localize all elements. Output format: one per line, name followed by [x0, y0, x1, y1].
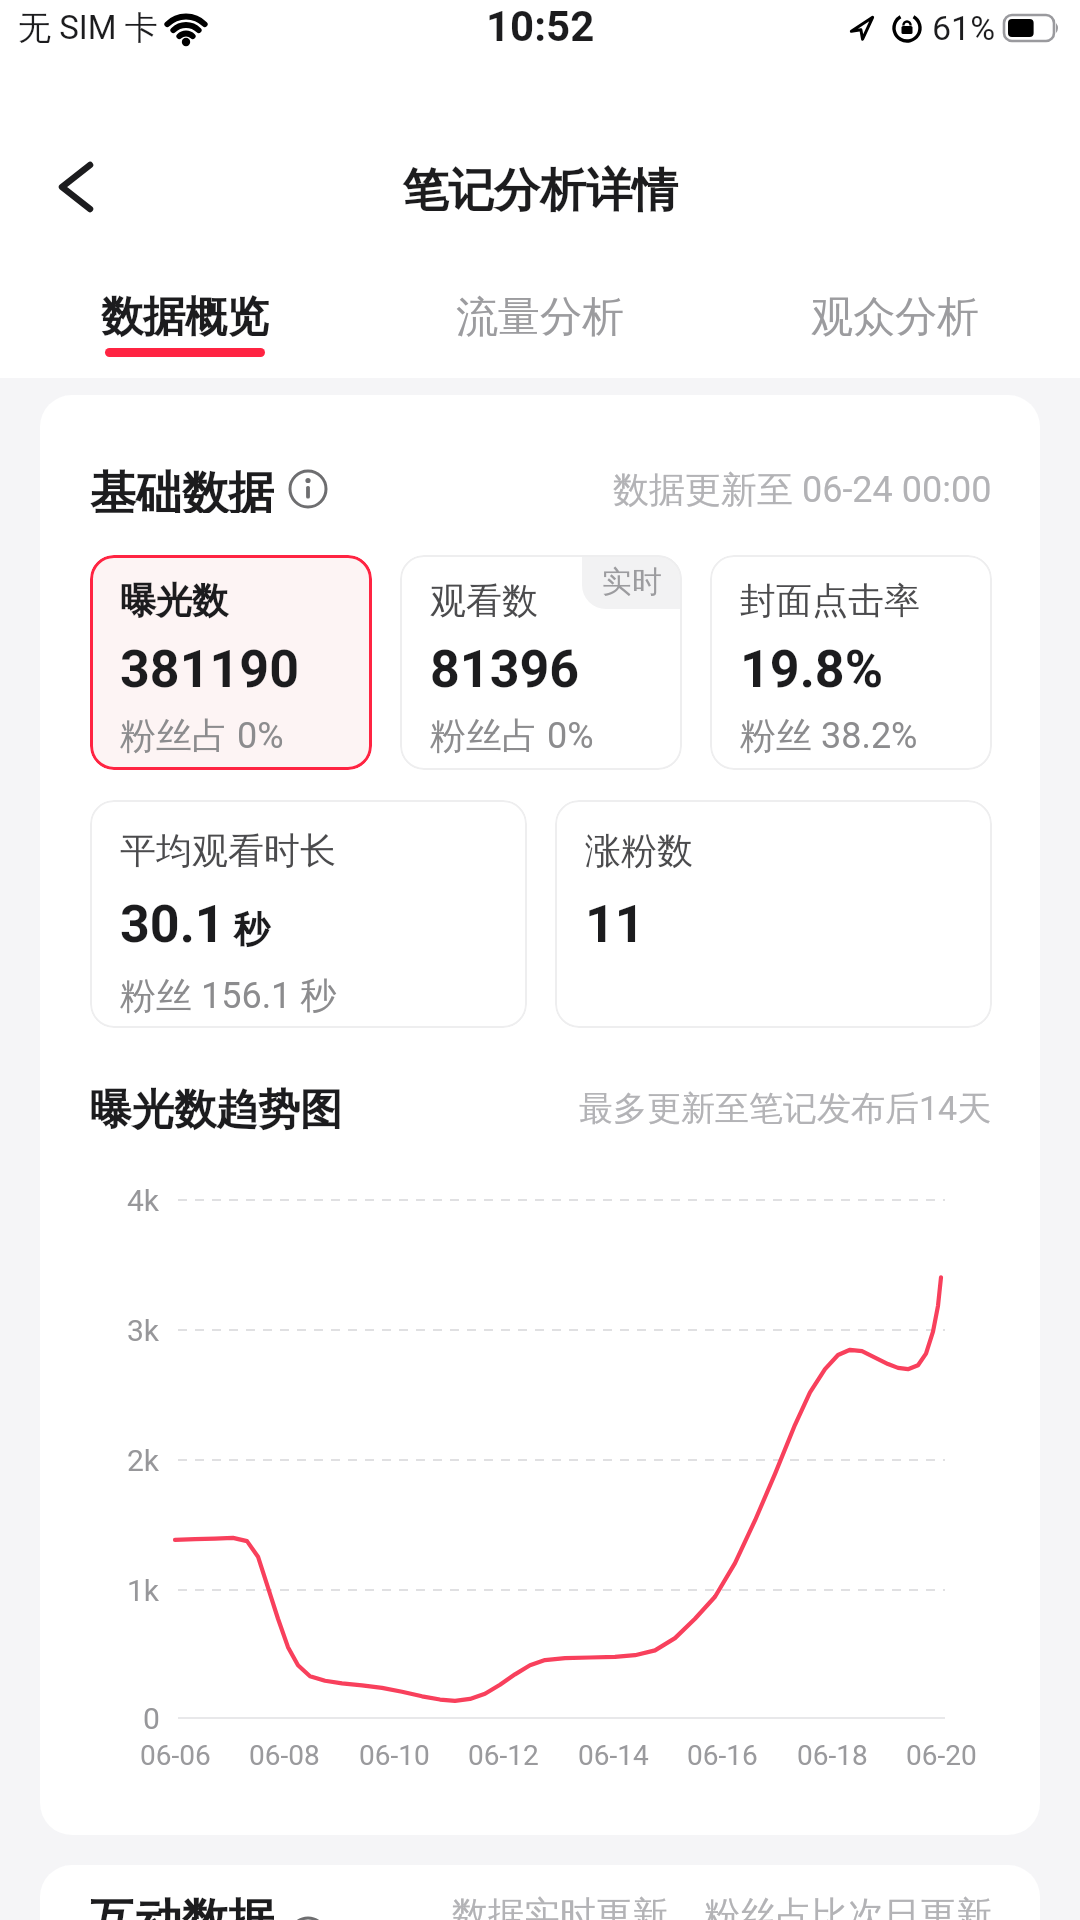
staticText: 06-06	[140, 1739, 211, 1772]
button[interactable]: 封面点击率	[710, 555, 992, 770]
staticText: 06-08	[249, 1739, 320, 1772]
staticText: 曝光数	[120, 578, 228, 623]
staticText: 81396	[430, 639, 580, 700]
staticText: 粉丝 38.2%	[740, 713, 918, 758]
button[interactable]: 平均观看时长	[90, 800, 527, 1028]
staticText: 381190	[120, 639, 300, 700]
button[interactable]: 观众分析	[717, 245, 1072, 378]
staticText: 观众分析	[811, 291, 979, 344]
staticText: 最多更新至笔记发布后14天	[579, 1087, 992, 1130]
staticText: 互动数据	[90, 1892, 274, 1920]
staticText: 流量分析	[456, 291, 624, 344]
staticText: 粉丝占 0%	[120, 713, 284, 758]
staticText: 11	[585, 894, 645, 955]
staticText: 61%	[932, 8, 996, 48]
staticText: 06-18	[797, 1739, 868, 1772]
staticText: 数据更新至 06-24 00:00	[613, 467, 992, 512]
staticText: 基础数据	[90, 465, 274, 513]
staticText: 06-14	[578, 1739, 649, 1772]
staticText: 06-10	[359, 1739, 430, 1772]
staticText: 粉丝占 0%	[430, 713, 594, 758]
staticText: 观看数	[430, 578, 538, 623]
button[interactable]: 曝光数	[90, 555, 372, 770]
staticText: 粉丝 156.1 秒	[120, 973, 337, 1018]
staticText: 无 SIM 卡	[18, 7, 158, 49]
staticText: 3k	[127, 1313, 160, 1348]
staticText: 10:52	[486, 2, 595, 51]
staticText: 数据实时更新，粉丝占比次日更新	[452, 1892, 992, 1920]
staticText: 数据概览	[101, 291, 269, 344]
staticText: 06-20	[906, 1739, 977, 1772]
staticText: 19.8%	[740, 639, 884, 700]
button[interactable]: 数据概览	[8, 245, 362, 378]
staticText: 1k	[127, 1573, 160, 1608]
staticText: 0	[143, 1701, 160, 1736]
button[interactable]: 流量分析	[362, 245, 717, 378]
staticText: 曝光数趋势图	[90, 1084, 342, 1132]
button[interactable]: 实时	[400, 555, 682, 770]
staticText: 2k	[127, 1443, 160, 1478]
staticText: 笔记分析详情	[402, 162, 678, 220]
button[interactable]	[40, 151, 112, 223]
button[interactable]: 涨粉数	[555, 800, 992, 1028]
staticText: 30.1 秒	[120, 894, 270, 955]
staticText: 实时	[602, 563, 662, 601]
staticText: 4k	[127, 1183, 160, 1218]
staticText: 封面点击率	[740, 578, 920, 623]
staticText: 06-16	[687, 1739, 758, 1772]
staticText: 平均观看时长	[120, 828, 336, 873]
staticText: 涨粉数	[585, 828, 693, 873]
staticText: 06-12	[468, 1739, 539, 1772]
